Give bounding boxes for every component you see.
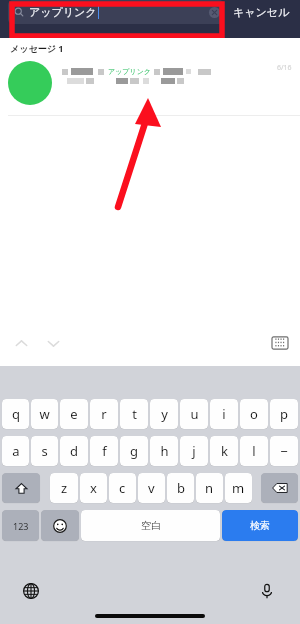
button[interactable]: o xyxy=(240,399,268,429)
button[interactable]: Change keyboard language xyxy=(20,580,42,602)
staticText: 123 xyxy=(13,520,29,532)
staticText: g xyxy=(130,442,138,460)
button[interactable]: g xyxy=(120,436,148,466)
staticText: n xyxy=(205,479,214,497)
staticText: 検索 xyxy=(250,519,270,532)
staticText: l xyxy=(252,442,256,460)
staticText: j xyxy=(192,442,196,460)
button[interactable]: v xyxy=(138,473,165,503)
button[interactable]: Emoji xyxy=(41,510,79,541)
staticText: p xyxy=(280,405,288,423)
staticText: z xyxy=(61,479,68,497)
button[interactable]: アップリンク xyxy=(0,61,300,105)
staticText: m xyxy=(232,479,245,497)
staticText: v xyxy=(148,479,155,497)
button[interactable]: f xyxy=(90,436,118,466)
button[interactable]: Clear xyxy=(209,7,220,18)
staticText: キャンセル xyxy=(233,5,290,19)
staticText: 6/16 xyxy=(277,63,292,73)
button[interactable]: Hide keyboard xyxy=(270,333,290,353)
button[interactable]: キャンセル xyxy=(231,1,292,23)
staticText: u xyxy=(190,405,199,423)
button[interactable]: m xyxy=(225,473,252,503)
button[interactable]: d xyxy=(60,436,88,466)
staticText: s xyxy=(41,442,48,460)
button[interactable]: y xyxy=(150,399,178,429)
button[interactable]: Backspace xyxy=(261,473,298,503)
button[interactable]: q xyxy=(2,399,29,429)
button[interactable]: l xyxy=(240,436,268,466)
staticText: − xyxy=(280,442,288,460)
button[interactable]: w xyxy=(31,399,58,429)
staticText: y xyxy=(161,405,168,423)
button[interactable]: 123 xyxy=(2,510,39,541)
button[interactable]: アップリンク xyxy=(8,0,224,24)
button[interactable]: j xyxy=(180,436,208,466)
staticText: r xyxy=(101,405,107,423)
staticText: q xyxy=(12,405,20,423)
staticText: アップリンク xyxy=(29,5,97,19)
button[interactable]: t xyxy=(120,399,148,429)
staticText: e xyxy=(70,405,78,423)
staticText: アップリンク xyxy=(108,67,151,76)
button[interactable]: n xyxy=(196,473,223,503)
staticText: a xyxy=(12,442,20,460)
button[interactable]: 検索 xyxy=(222,510,298,541)
button[interactable]: x xyxy=(80,473,107,503)
button[interactable]: Shift xyxy=(2,473,40,503)
staticText: i xyxy=(222,405,226,423)
button[interactable]: e xyxy=(60,399,88,429)
button[interactable]: i xyxy=(210,399,238,429)
button[interactable]: r xyxy=(90,399,118,429)
staticText: k xyxy=(221,442,228,460)
button[interactable]: z xyxy=(50,473,78,503)
button[interactable]: u xyxy=(180,399,208,429)
staticText: 空白 xyxy=(141,519,161,532)
button[interactable]: a xyxy=(2,436,29,466)
staticText: d xyxy=(70,442,78,460)
button[interactable]: s xyxy=(31,436,58,466)
button[interactable]: c xyxy=(109,473,136,503)
staticText: w xyxy=(39,405,50,423)
staticText: c xyxy=(119,479,126,497)
button[interactable]: b xyxy=(167,473,194,503)
button[interactable]: k xyxy=(210,436,238,466)
button[interactable]: Next result xyxy=(42,332,64,354)
staticText: b xyxy=(177,479,185,497)
button[interactable]: 空白 xyxy=(81,510,220,541)
staticText: x xyxy=(90,479,97,497)
staticText: f xyxy=(102,442,107,460)
button[interactable]: h xyxy=(150,436,178,466)
button[interactable]: − xyxy=(270,436,298,466)
staticText: o xyxy=(250,405,258,423)
staticText: h xyxy=(160,442,169,460)
button[interactable]: p xyxy=(270,399,298,429)
staticText: メッセージ 1 xyxy=(10,42,64,54)
button[interactable]: Previous result xyxy=(10,332,32,354)
staticText: t xyxy=(132,405,137,423)
button[interactable]: Voice input xyxy=(256,580,278,602)
